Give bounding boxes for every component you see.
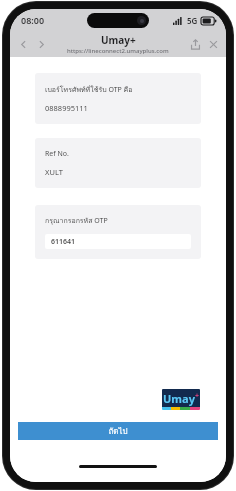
button[interactable]: 611641 [45,234,191,249]
staticText: 0888995111 [45,103,88,113]
staticText: 08:00 [21,14,45,26]
button[interactable]: Close [204,35,222,53]
button[interactable]: Forward [32,35,50,53]
staticText: 5G [187,15,198,26]
staticText: 611641 [51,237,76,247]
button[interactable]: Share [186,35,204,53]
staticText: Ref No. [45,149,69,159]
staticText: Umay+ [101,33,136,47]
staticText: XULT [45,167,63,177]
staticText: เบอร์โทรศัพท์ที่ใช้รับ OTP คือ [45,84,133,95]
staticText: Umay [163,391,195,406]
button[interactable]: Back [14,35,32,53]
button[interactable]: Umay+ logo [162,389,200,410]
button[interactable]: ถัดไป [18,422,218,440]
staticText: ถัดไป [108,425,128,438]
staticText: https://lineconnect2.umayplus.com [67,47,169,55]
staticText: กรุณากรอกรหัส OTP [45,215,108,226]
staticText: + [195,391,200,401]
